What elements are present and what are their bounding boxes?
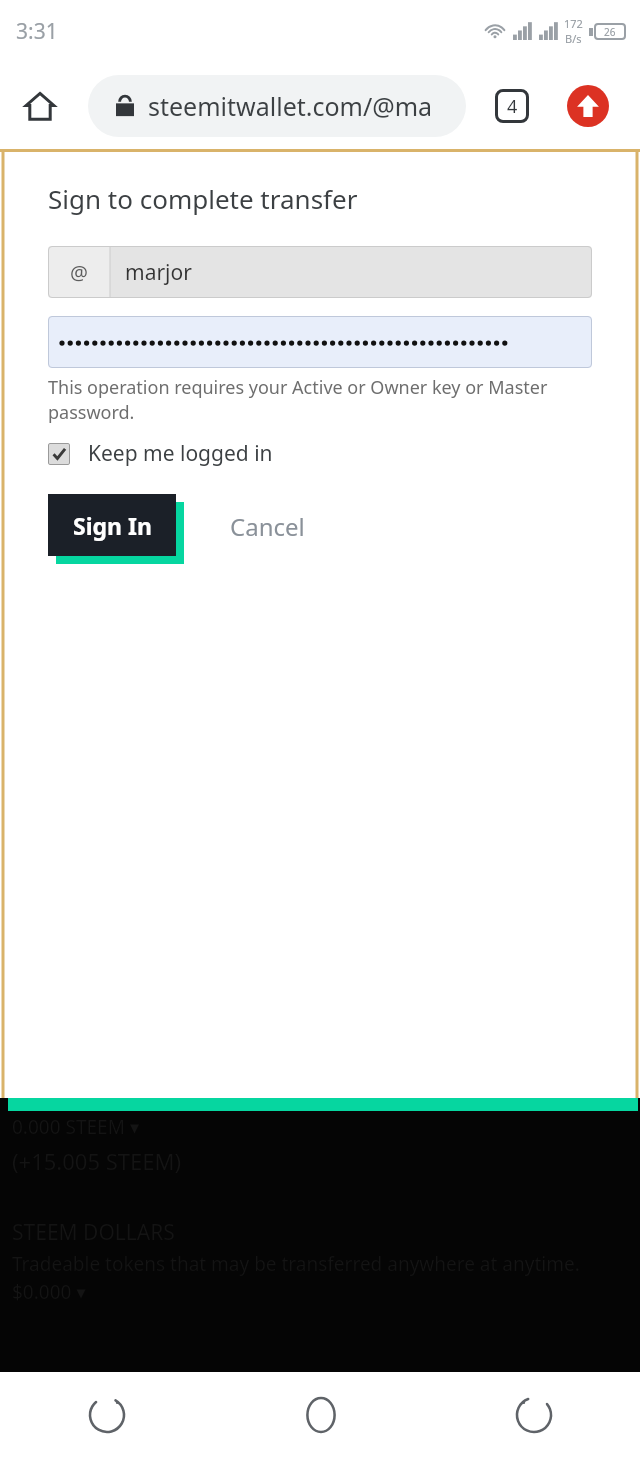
staticText: @: [70, 259, 88, 286]
staticText: Keep me logged in: [88, 439, 273, 468]
staticText: B/s: [565, 31, 582, 46]
button[interactable]: Back: [427, 1372, 640, 1458]
staticText: 26: [604, 25, 616, 39]
button[interactable]: Home: [214, 1372, 427, 1458]
staticText: 0.000 STEEM ▾: [12, 1114, 140, 1140]
staticText: $0.000 ▾: [12, 1279, 86, 1305]
button[interactable]: [48, 316, 592, 368]
button[interactable]: Tabs: [484, 78, 540, 134]
staticText: 172: [564, 16, 583, 31]
staticText: Sign to complete transfer: [48, 181, 358, 216]
staticText: Sign In: [73, 510, 152, 541]
button[interactable]: Sign In: [48, 494, 176, 556]
staticText: (+15.005 STEEM): [12, 1146, 182, 1176]
staticText: STEEM DOLLARS: [12, 1218, 175, 1247]
button[interactable]: steemitwallet.com/@ma: [88, 75, 466, 137]
staticText: Tradeable tokens that may be transferred…: [12, 1251, 580, 1277]
button[interactable]: Home: [12, 78, 68, 134]
staticText: steemitwallet.com/@ma: [148, 89, 433, 123]
button[interactable]: Update: [560, 78, 616, 134]
staticText: marjor: [125, 258, 192, 287]
button[interactable]: Recents: [0, 1372, 214, 1458]
button[interactable]: Keep me logged in: [48, 439, 273, 468]
button[interactable]: Cancel: [224, 504, 311, 549]
staticText: Cancel: [230, 510, 305, 543]
staticText: 3:31: [16, 17, 58, 46]
staticText: 4: [507, 94, 518, 119]
staticText: This operation requires your Active or O…: [48, 375, 592, 425]
button[interactable]: @: [48, 246, 592, 298]
